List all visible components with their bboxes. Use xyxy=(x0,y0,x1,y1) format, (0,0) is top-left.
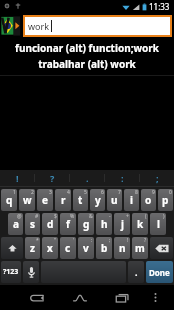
button[interactable]: q xyxy=(1,189,17,211)
button[interactable]: p xyxy=(158,189,173,211)
button[interactable]: t xyxy=(73,189,88,211)
button[interactable]: k xyxy=(132,213,148,235)
button[interactable]: Recents xyxy=(109,285,136,310)
staticText: @ xyxy=(17,213,22,220)
staticText: Done xyxy=(149,267,170,278)
button[interactable]: App icon xyxy=(1,14,21,38)
button[interactable]: : xyxy=(105,170,139,186)
staticText: n xyxy=(119,241,126,255)
button[interactable]: x xyxy=(42,237,58,259)
button[interactable]: ? xyxy=(35,170,69,186)
button[interactable]: i xyxy=(124,189,139,211)
button[interactable]: s xyxy=(25,213,40,235)
button[interactable]: ! xyxy=(0,170,34,186)
staticText: w xyxy=(23,193,32,207)
staticText: i xyxy=(130,193,133,207)
button[interactable]: Space xyxy=(41,261,126,283)
button[interactable]: Home xyxy=(66,285,93,310)
button[interactable]: l xyxy=(150,213,166,235)
staticText: ) xyxy=(163,213,165,220)
button[interactable]: m xyxy=(132,237,148,259)
staticText: * xyxy=(36,237,39,244)
staticText: x xyxy=(47,241,53,255)
staticText: 6 xyxy=(101,189,104,196)
button[interactable]: work xyxy=(23,15,172,37)
staticText: u xyxy=(111,193,118,207)
staticText: ' xyxy=(73,237,75,244)
staticText: m xyxy=(135,241,145,255)
staticText: d xyxy=(47,217,54,231)
button[interactable]: Back xyxy=(23,285,50,310)
staticText: l xyxy=(157,217,160,231)
staticText: ? xyxy=(50,172,55,184)
staticText: 2 xyxy=(31,189,34,196)
staticText: t xyxy=(78,193,83,207)
staticText: 11:33 xyxy=(149,1,170,12)
staticText: k xyxy=(137,217,144,231)
staticText: g xyxy=(83,217,90,231)
button[interactable]: j xyxy=(114,213,130,235)
staticText: % xyxy=(70,213,75,220)
staticText: ? xyxy=(144,237,147,244)
staticText: 3 xyxy=(49,189,52,196)
staticText: 9 xyxy=(152,189,155,196)
button[interactable]: Backspace xyxy=(150,237,173,259)
staticText: 0 xyxy=(169,189,172,196)
button[interactable]: g xyxy=(78,213,94,235)
staticText: p xyxy=(162,193,169,207)
staticText: - xyxy=(109,213,111,220)
staticText: 4 xyxy=(67,189,70,196)
staticText: 8 xyxy=(135,189,138,196)
staticText: v xyxy=(83,241,89,255)
button[interactable]: h xyxy=(96,213,112,235)
staticText: b xyxy=(101,241,108,255)
button[interactable]: o xyxy=(141,189,156,211)
staticText: y xyxy=(95,193,101,207)
staticText: ! xyxy=(127,237,129,244)
button[interactable]: . xyxy=(128,261,144,283)
button[interactable]: n xyxy=(114,237,130,259)
button[interactable]: e xyxy=(37,189,53,211)
button[interactable]: c xyxy=(60,237,76,259)
staticText: " xyxy=(54,237,57,244)
staticText: a xyxy=(13,217,19,231)
staticText: r xyxy=(61,193,66,207)
button[interactable]: More options xyxy=(145,285,166,310)
button[interactable]: trabalhar (alt) work xyxy=(0,57,174,71)
staticText: o xyxy=(145,193,152,207)
button[interactable]: . xyxy=(70,170,104,186)
staticText: : xyxy=(91,237,93,244)
staticText: ; xyxy=(109,237,111,244)
button[interactable]: Voice input xyxy=(23,261,39,283)
staticText: z xyxy=(30,241,35,255)
button[interactable]: z xyxy=(25,237,40,259)
button[interactable]: ?123 xyxy=(1,261,21,283)
button[interactable]: y xyxy=(90,189,105,211)
staticText: $ xyxy=(54,213,57,220)
staticText: # xyxy=(35,213,39,220)
button[interactable]: funcionar (alt) function;work xyxy=(0,41,174,55)
staticText: ( xyxy=(145,213,147,220)
button[interactable]: Done xyxy=(146,261,173,283)
button[interactable]: w xyxy=(19,189,35,211)
staticText: ?123 xyxy=(3,267,19,277)
staticText: h xyxy=(101,217,108,231)
button[interactable]: d xyxy=(42,213,58,235)
staticText: ! xyxy=(16,172,19,184)
button[interactable]: ; xyxy=(140,170,174,186)
staticText: 7 xyxy=(118,189,121,196)
button[interactable]: b xyxy=(96,237,112,259)
button[interactable]: u xyxy=(107,189,122,211)
staticText: j xyxy=(121,217,124,231)
staticText: f xyxy=(66,217,70,231)
staticText: + xyxy=(126,213,129,220)
staticText: s xyxy=(30,217,36,231)
staticText: . xyxy=(135,266,138,278)
button[interactable]: v xyxy=(78,237,94,259)
button[interactable]: f xyxy=(60,213,76,235)
staticText: . xyxy=(86,172,89,184)
button[interactable]: r xyxy=(55,189,71,211)
button[interactable]: Shift xyxy=(1,237,23,259)
staticText: & xyxy=(89,213,93,220)
button[interactable]: a xyxy=(8,213,23,235)
